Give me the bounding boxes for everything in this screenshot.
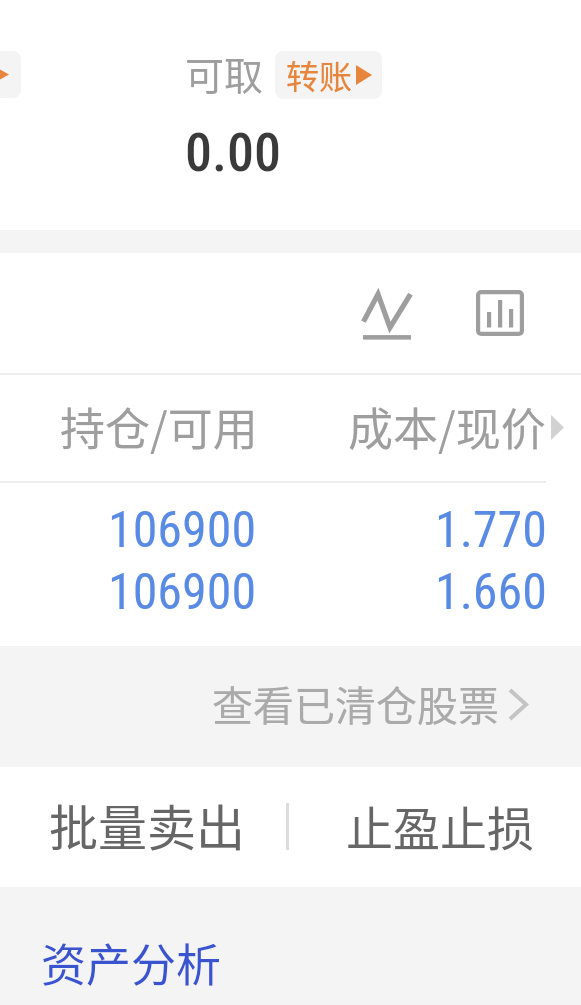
- button[interactable]: 走势图: [339, 271, 435, 367]
- button[interactable]: 转入: [0, 51, 21, 98]
- staticText: 批量卖出: [49, 789, 246, 860]
- staticText: 1.770: [435, 501, 547, 560]
- button[interactable]: 查看已清仓股票: [0, 646, 581, 767]
- staticText: 可取: [185, 45, 264, 101]
- staticText: 止盈止损: [346, 791, 534, 859]
- staticText: 1.660: [435, 563, 547, 622]
- staticText: 资产分析: [41, 930, 222, 995]
- staticText: 持仓/可用: [60, 394, 258, 459]
- button[interactable]: 批量卖出: [0, 767, 287, 887]
- button[interactable]: 柱状图: [452, 265, 548, 361]
- staticText: 106900: [108, 563, 257, 622]
- staticText: 转账: [286, 51, 352, 99]
- button[interactable]: 资产分析: [0, 887, 581, 1005]
- staticText: 成本/现价: [348, 394, 546, 459]
- staticText: 106900: [108, 501, 257, 560]
- staticText: 0.00: [185, 121, 282, 184]
- button[interactable]: 止盈止损: [290, 767, 581, 887]
- button[interactable]: 转账: [275, 51, 382, 99]
- button[interactable]: 更多列: [551, 415, 564, 440]
- staticText: 查看已清仓股票: [212, 673, 499, 732]
